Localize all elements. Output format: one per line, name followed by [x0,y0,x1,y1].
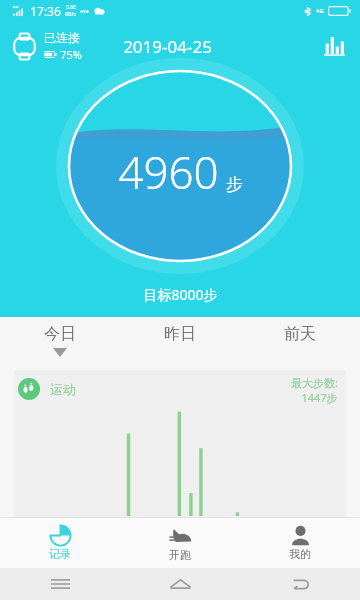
button[interactable]: Menu [0,568,120,600]
staticText: 17:36 [30,3,61,19]
button[interactable]: 我的 [240,518,360,568]
staticText: 今日 [44,324,76,344]
staticText: 开跑 [169,548,191,562]
button[interactable]: 昨日 [120,317,240,370]
button[interactable]: 前天 [240,317,360,370]
button[interactable]: 今日 [0,317,120,370]
staticText: 步 [226,174,243,195]
staticText: 目标8000步 [143,285,218,304]
staticText: 昨日 [164,324,196,344]
button[interactable]: Watch B31 connected [8,27,85,65]
staticText: 2019-04-25 [123,35,212,58]
staticText: 我的 [289,547,311,561]
button[interactable]: Statistics [320,32,349,61]
staticText: 75% [60,47,82,62]
staticText: 4G [316,7,324,15]
button[interactable]: Back [240,568,360,600]
staticText: 记录 [49,547,71,561]
staticText: 1447步 [301,390,338,405]
staticText: 已连接 [44,30,80,45]
button[interactable]: 开跑 [120,518,240,568]
button[interactable]: Home [120,568,240,600]
staticText: 运动 [50,381,76,397]
staticText: KB/s [65,11,76,18]
staticText: 4960 [118,142,219,202]
other: Watch B31 connected [11,33,38,60]
staticText: 最大步数: [291,375,338,390]
staticText: 0.60 [66,4,76,11]
staticText: 前天 [284,324,316,344]
button[interactable]: 运动 [14,370,346,517]
button[interactable]: 记录 [0,518,120,568]
